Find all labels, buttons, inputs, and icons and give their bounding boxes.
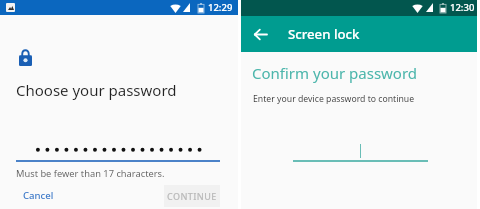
staticText: 12:30	[450, 1, 475, 14]
staticText: Choose your password	[16, 80, 177, 100]
staticText: Must be fewer than 17 characters.	[16, 167, 165, 180]
staticText: Cancel	[23, 189, 54, 202]
button[interactable]: CONTINUE	[164, 185, 220, 207]
staticText: Screen lock	[288, 25, 360, 43]
button[interactable]: Navigate up	[248, 22, 272, 46]
staticText: Enter your device password to continue	[253, 93, 415, 105]
staticText: Confirm your password	[252, 63, 418, 83]
button[interactable]: Cancel	[17, 184, 60, 207]
staticText: CONTINUE	[167, 190, 217, 202]
staticText: 12:29	[208, 1, 233, 14]
